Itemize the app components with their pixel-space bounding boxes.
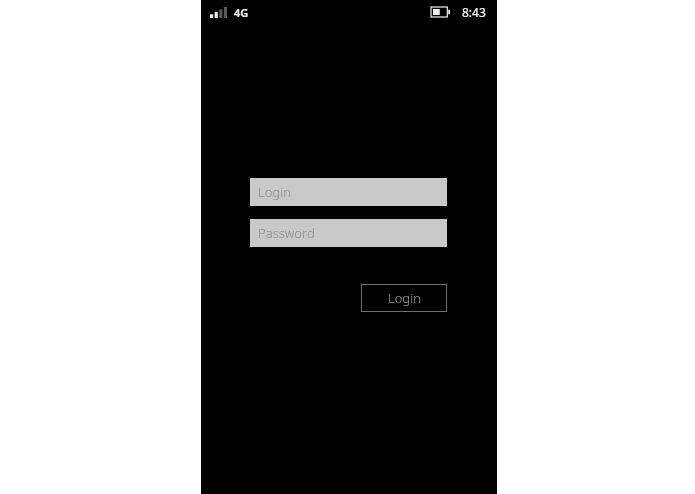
button[interactable]: Login bbox=[250, 178, 447, 206]
other: Battery bbox=[431, 7, 450, 17]
staticText: Password bbox=[258, 224, 315, 242]
staticText: 8:43 bbox=[462, 4, 486, 20]
staticText: Login bbox=[258, 183, 291, 201]
staticText: 4G bbox=[234, 5, 249, 20]
staticText: Login bbox=[388, 289, 421, 307]
button[interactable]: Login bbox=[361, 284, 447, 312]
button[interactable]: Password bbox=[250, 219, 447, 247]
